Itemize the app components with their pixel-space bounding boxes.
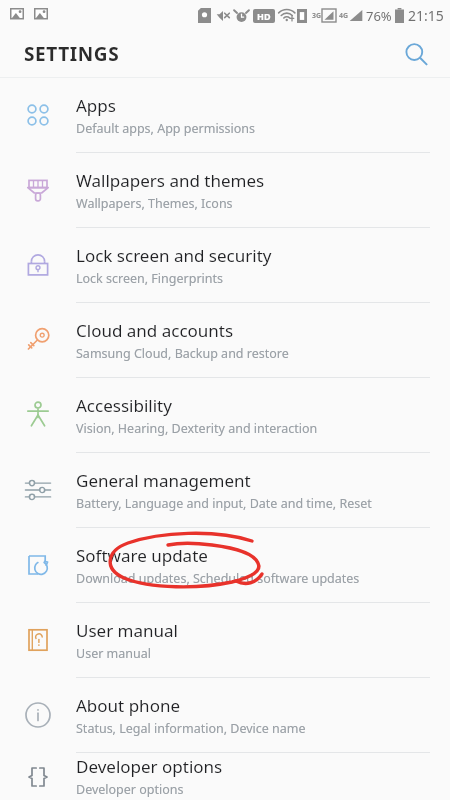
staticText: Vision, Hearing, Dexterity and interacti…: [76, 420, 318, 437]
staticText: Download updates, Scheduled software upd…: [76, 570, 360, 587]
staticText: Wallpapers, Themes, Icons: [76, 195, 233, 212]
button[interactable]: Software update: [0, 528, 450, 602]
staticText: About phone: [76, 694, 181, 717]
button[interactable]: About phone: [0, 678, 450, 752]
staticText: Samsung Cloud, Backup and restore: [76, 345, 289, 362]
staticText: Developer options: [76, 781, 184, 798]
staticText: General management: [76, 469, 251, 492]
staticText: Battery, Language and input, Date and ti…: [76, 495, 372, 512]
button[interactable]: Search: [396, 34, 436, 74]
staticText: SETTINGS: [24, 41, 120, 67]
staticText: Developer options: [76, 755, 223, 778]
staticText: HD: [257, 10, 271, 22]
staticText: 21:15: [408, 6, 444, 25]
button[interactable]: Lock screen and security: [0, 228, 450, 302]
staticText: 4G: [339, 11, 349, 21]
button[interactable]: User manual: [0, 603, 450, 677]
button[interactable]: Accessibility: [0, 378, 450, 452]
staticText: Cloud and accounts: [76, 319, 234, 342]
staticText: 3G: [312, 11, 322, 21]
button[interactable]: Wallpapers and themes: [0, 153, 450, 227]
staticText: Wallpapers and themes: [76, 169, 265, 192]
staticText: Apps: [76, 94, 116, 117]
button[interactable]: General management: [0, 453, 450, 527]
staticText: Accessibility: [76, 394, 172, 417]
staticText: Status, Legal information, Device name: [76, 720, 306, 737]
button[interactable]: Apps: [0, 78, 450, 152]
staticText: Software update: [76, 544, 208, 567]
staticText: Lock screen and security: [76, 244, 272, 267]
button[interactable]: Developer options: [0, 753, 450, 800]
button[interactable]: Cloud and accounts: [0, 303, 450, 377]
staticText: Default apps, App permissions: [76, 120, 256, 137]
staticText: User manual: [76, 645, 151, 662]
staticText: 76%: [366, 7, 392, 25]
staticText: User manual: [76, 619, 178, 642]
staticText: Lock screen, Fingerprints: [76, 270, 224, 287]
